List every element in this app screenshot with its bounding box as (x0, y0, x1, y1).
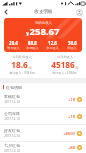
staticText: 18.6 (11, 59, 28, 70)
staticText: 2017-12-14 (4, 149, 20, 153)
staticText: 本周收入 (26, 46, 39, 50)
button[interactable]: 公司年终 (0, 108, 86, 125)
staticText: 88.8 (28, 40, 37, 46)
button[interactable]: 七夕红包 (0, 142, 86, 153)
staticText: 我的总收入 (35, 21, 52, 25)
staticText: +88 (68, 145, 75, 150)
button[interactable]: 零钱红包 (0, 91, 86, 108)
staticText: 20.4 (9, 40, 18, 46)
staticText: 12.6 (48, 40, 57, 46)
staticText: 元 (28, 66, 32, 70)
staticText: 收支明细 (34, 9, 53, 15)
staticText: 2017-12-14 (4, 134, 20, 138)
staticText: 七夕红包 (4, 143, 20, 148)
button[interactable]: Back (0, 8, 11, 16)
staticText: 今日红包收入 (12, 55, 32, 59)
staticText: 2017-12-14 (4, 117, 20, 121)
staticText: 本月收入 (46, 46, 59, 50)
staticText: 总收入 (67, 46, 77, 50)
button[interactable]: Customer service (76, 9, 83, 16)
staticText: 累计收入：518.6元 (9, 71, 35, 75)
staticText: 昨日收入 (7, 46, 20, 50)
staticText: 45186 (51, 59, 75, 70)
staticText: ¥ (26, 31, 29, 37)
staticText: 2017-12-14 (4, 100, 20, 104)
staticText: 元 (75, 66, 79, 70)
staticText: +8000 (63, 131, 75, 136)
staticText: 红包明细 (6, 85, 22, 90)
staticText: 今日总收入 (57, 55, 73, 59)
staticText: +18 (68, 114, 75, 119)
staticText: 公司年终 (4, 111, 20, 116)
staticText: 零钱红包 (4, 94, 20, 99)
button[interactable]: 好友红包 (0, 125, 86, 142)
staticText: 好友红包 (4, 128, 20, 133)
staticText: 258.67 (29, 25, 60, 38)
staticText: 昨日收入 +5184元 (52, 71, 77, 75)
staticText: 36.6 (68, 40, 77, 46)
staticText: +18 (68, 97, 75, 102)
